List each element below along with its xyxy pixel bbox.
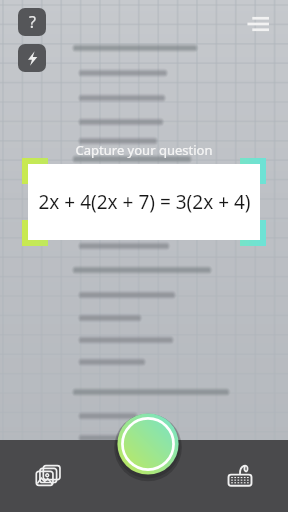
staticText: Capture your question [0,141,288,159]
button[interactable]: Help [18,8,46,36]
button[interactable]: Flash [18,44,46,72]
button[interactable]: Menu [242,8,274,40]
staticText: 2x + 4(2x + 7) = 3(2x + 4) [38,189,251,215]
button[interactable]: Gallery [0,440,96,512]
button[interactable]: Keyboard [192,440,288,512]
button[interactable]: Capture [112,408,184,480]
button[interactable]: 2x + 4(2x + 7) = 3(2x + 4) [28,164,260,240]
staticText: ? [29,11,36,33]
